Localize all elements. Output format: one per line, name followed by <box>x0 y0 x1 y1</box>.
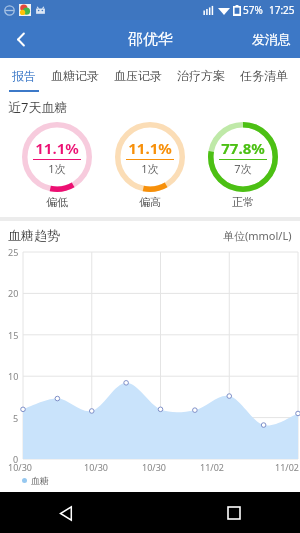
button[interactable]: 11.1% <box>114 121 186 209</box>
staticText: 11/02 <box>200 461 224 473</box>
staticText: 报告 <box>12 68 36 83</box>
button[interactable]: 血糖记录 <box>43 58 106 92</box>
button[interactable]: Back <box>50 497 82 529</box>
staticText: 11.1% <box>128 138 172 158</box>
button[interactable]: Back <box>0 20 42 58</box>
staticText: 发消息 <box>252 31 291 47</box>
staticText: 任务清单 <box>240 68 288 83</box>
button[interactable]: Recent apps <box>218 497 250 529</box>
staticText: 17:25 <box>269 3 295 17</box>
button[interactable]: 77.8% <box>207 121 279 209</box>
staticText: 邵优华 <box>128 30 173 49</box>
staticText: 20 <box>8 287 19 299</box>
staticText: 10 <box>8 370 19 382</box>
button[interactable]: 报告 <box>5 58 43 92</box>
staticText: 57% <box>243 3 263 17</box>
button[interactable]: 血压记录 <box>106 58 169 92</box>
staticText: 10/30 <box>8 461 32 473</box>
staticText: 血压记录 <box>114 68 162 83</box>
staticText: 1次 <box>141 161 159 176</box>
staticText: 血糖趋势 <box>8 227 60 243</box>
staticText: 7次 <box>234 161 252 176</box>
staticText: 11.1% <box>35 138 79 158</box>
staticText: 15 <box>8 329 19 341</box>
staticText: 治疗方案 <box>177 68 225 83</box>
button[interactable]: 任务清单 <box>232 58 295 92</box>
staticText: 近7天血糖 <box>8 98 68 116</box>
button[interactable]: 11.1% <box>21 121 93 209</box>
staticText: 单位(mmol/L) <box>223 228 292 243</box>
staticText: 1次 <box>48 161 66 176</box>
staticText: 25 <box>8 246 19 258</box>
staticText: 正常 <box>232 195 254 209</box>
button[interactable]: 治疗方案 <box>169 58 232 92</box>
button[interactable]: 发消息 <box>252 20 291 58</box>
staticText: 偏高 <box>139 195 161 209</box>
staticText: 偏低 <box>46 195 68 209</box>
staticText: 11/02 <box>275 461 299 473</box>
staticText: 10/30 <box>84 461 108 473</box>
staticText: 血糖 <box>31 475 49 486</box>
staticText: 5 <box>13 412 19 424</box>
staticText: 10/30 <box>142 461 166 473</box>
staticText: 0 <box>13 453 19 465</box>
staticText: 血糖记录 <box>51 68 99 83</box>
staticText: 77.8% <box>221 138 265 158</box>
